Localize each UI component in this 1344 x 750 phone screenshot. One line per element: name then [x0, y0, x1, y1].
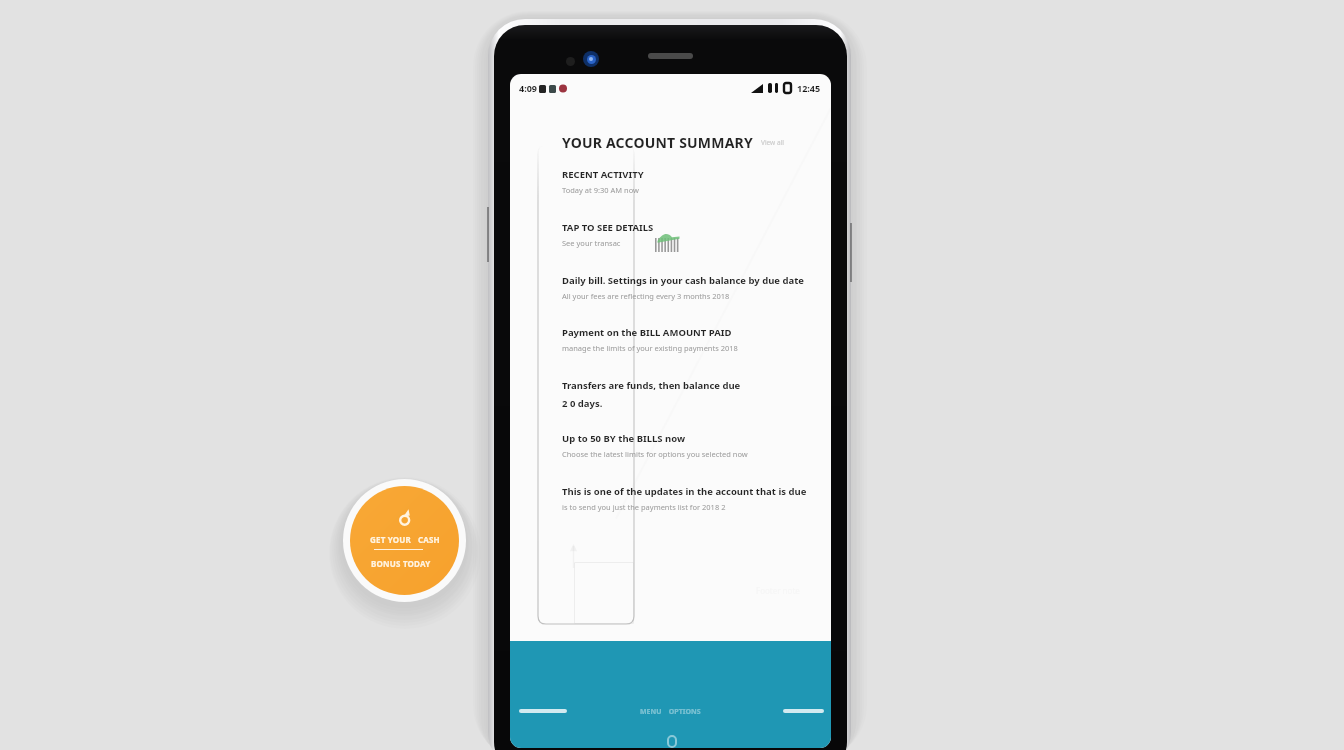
button[interactable]: TAP TO SEE DETAILS — [562, 221, 823, 248]
button[interactable]: Transfers are funds, then balance due 2 … — [562, 379, 823, 410]
staticText: See your transac — [562, 238, 621, 248]
staticText: View all — [761, 138, 784, 147]
staticText: All your fees are reflecting every 3 mon… — [562, 291, 730, 301]
staticText: Transfers are funds, then balance due 2 … — [562, 379, 741, 410]
button[interactable]: YOUR ACCOUNT SUMMARY — [562, 133, 784, 152]
staticText: Choose the latest limits for options you… — [562, 449, 748, 459]
button[interactable]: Get your cash bonus today — [350, 486, 459, 595]
staticText: This is one of the updates in the accoun… — [562, 485, 807, 498]
staticText: YOUR ACCOUNT SUMMARY — [562, 133, 753, 152]
button[interactable]: Daily bill. Settings in your cash balanc… — [562, 274, 823, 301]
staticText: 4:09 — [519, 82, 537, 94]
staticText: 12:45 — [797, 82, 821, 94]
staticText: Payment on the BILL AMOUNT PAID — [562, 326, 732, 339]
staticText: Up to 50 BY the BILLS now — [562, 432, 686, 445]
staticText: Daily bill. Settings in your cash balanc… — [562, 274, 804, 287]
button[interactable]: Payment on the BILL AMOUNT PAID — [562, 326, 823, 353]
button[interactable]: RECENT ACTIVITY — [562, 168, 823, 195]
staticText: is to send you just the payments list fo… — [562, 502, 726, 512]
staticText: Today at 9:30 AM now — [562, 185, 639, 195]
staticText: TAP TO SEE DETAILS — [562, 221, 654, 234]
staticText: RECENT ACTIVITY — [562, 168, 644, 181]
staticText: manage the limits of your existing payme… — [562, 343, 738, 353]
button[interactable]: Up to 50 BY the BILLS now — [562, 432, 823, 459]
staticText: GET YOUR CASH — [370, 534, 440, 545]
staticText: BONUS TODAY — [371, 558, 431, 569]
button[interactable]: This is one of the updates in the accoun… — [562, 485, 823, 512]
staticText: MENU OPTIONS — [640, 707, 701, 717]
